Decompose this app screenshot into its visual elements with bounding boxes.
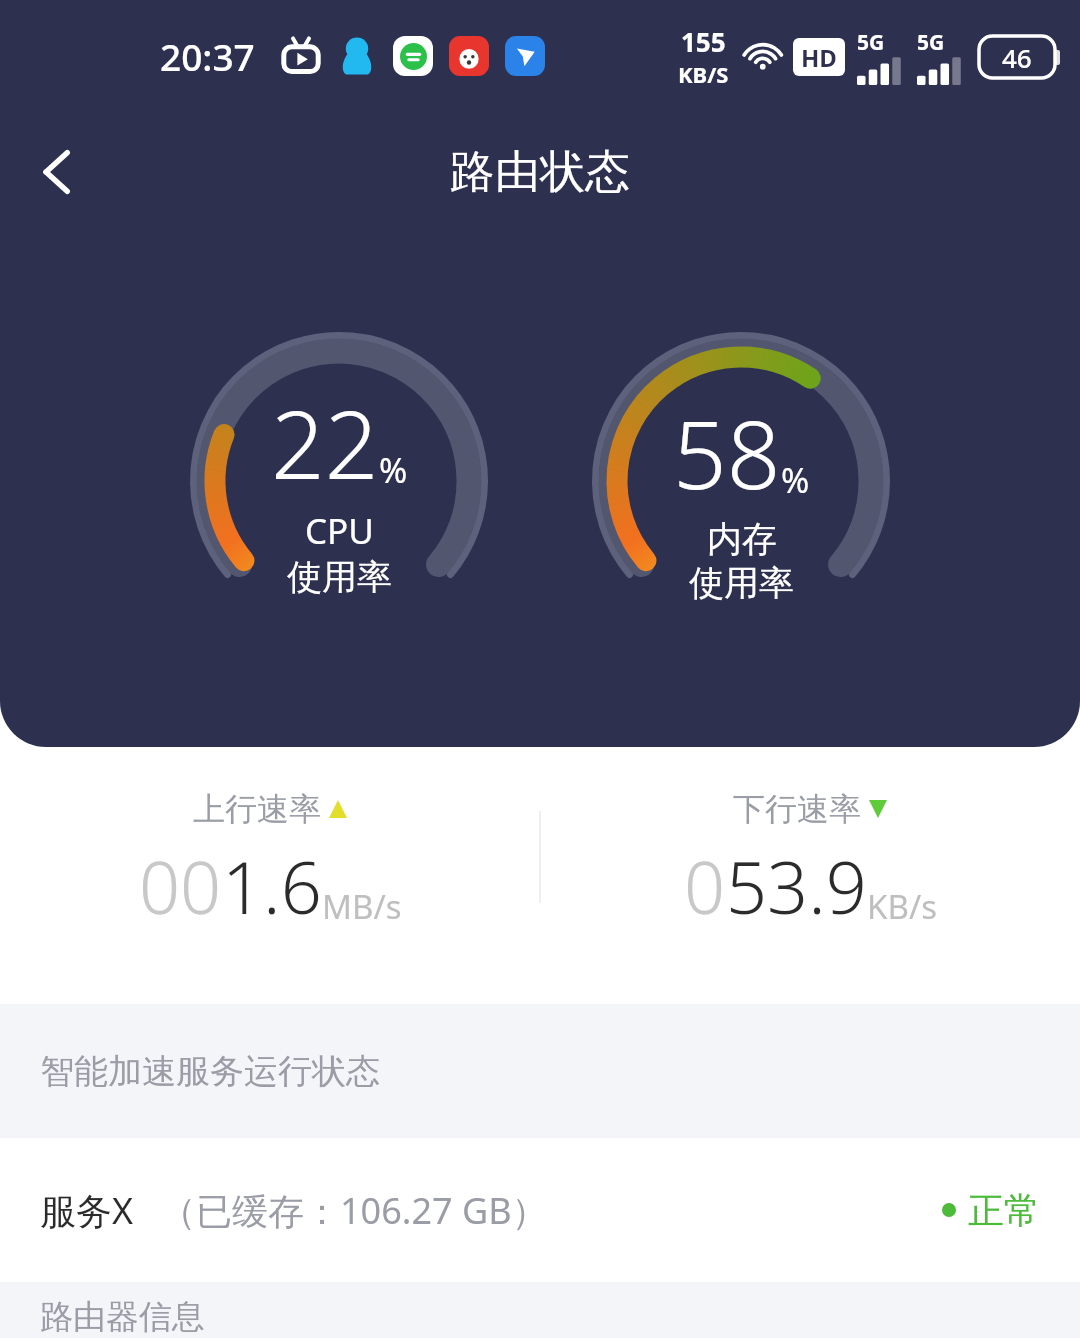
- button[interactable]: 服务X: [0, 1138, 1080, 1282]
- staticText: 上行速率: [193, 789, 321, 829]
- staticText: 58: [673, 389, 781, 517]
- staticText: 路由器信息: [40, 1296, 205, 1338]
- staticText: 22: [271, 379, 379, 507]
- button[interactable]: Back: [18, 132, 98, 212]
- staticText: 20:37: [160, 31, 255, 81]
- staticText: 5G: [917, 28, 945, 57]
- staticText: CPU: [305, 507, 374, 555]
- staticText: %: [781, 457, 810, 503]
- staticText: （已缓存：106.27 GB）: [160, 1186, 548, 1235]
- staticText: 正常: [968, 1188, 1040, 1233]
- staticText: 46: [1002, 40, 1032, 75]
- staticText: 0: [684, 837, 726, 935]
- staticText: 路由状态: [450, 144, 630, 201]
- staticText: 5G: [857, 28, 885, 57]
- staticText: %: [379, 447, 408, 493]
- staticText: 53.9: [726, 837, 867, 935]
- staticText: KB/S: [678, 59, 729, 89]
- staticText: 内存: [707, 517, 777, 561]
- staticText: MB/s: [322, 884, 402, 929]
- staticText: 00: [139, 837, 222, 935]
- staticText: 使用率: [689, 561, 794, 605]
- staticText: 下行速率: [733, 789, 861, 829]
- staticText: 1.6: [222, 837, 322, 935]
- staticText: 智能加速服务运行状态: [40, 1050, 380, 1093]
- staticText: HD: [801, 41, 837, 74]
- staticText: KB/s: [867, 884, 937, 929]
- staticText: 155: [681, 24, 726, 59]
- staticText: 服务X: [40, 1186, 134, 1235]
- staticText: 使用率: [287, 555, 392, 599]
